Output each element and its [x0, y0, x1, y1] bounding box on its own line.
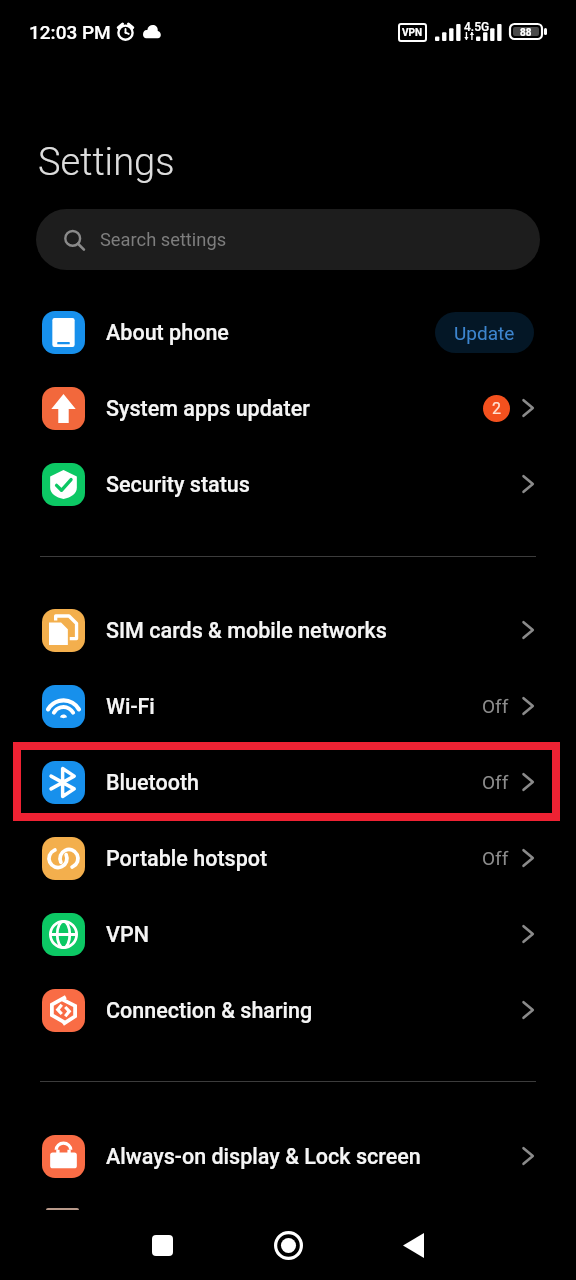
staticText: Search settings: [100, 229, 227, 250]
button[interactable]: Always-on display & Lock screen: [0, 1118, 576, 1194]
button[interactable]: Bluetooth: [0, 744, 576, 820]
staticText: Security status: [106, 472, 250, 497]
staticText: Off: [482, 695, 509, 717]
button[interactable]: Portable hotspot: [0, 820, 576, 896]
staticText: VPN: [106, 922, 149, 947]
button[interactable]: Connection & sharing: [0, 972, 576, 1048]
button[interactable]: Back: [351, 1210, 475, 1280]
staticText: Connection & sharing: [106, 998, 313, 1023]
button[interactable]: Update: [435, 312, 534, 353]
staticText: Portable hotspot: [106, 846, 268, 871]
staticText: Always-on display & Lock screen: [106, 1144, 421, 1169]
staticText: 88: [520, 27, 532, 36]
button[interactable]: System apps updater: [0, 370, 576, 446]
button[interactable]: Search settings: [36, 209, 540, 270]
staticText: Bluetooth: [106, 770, 199, 795]
staticText: Off: [482, 847, 509, 869]
staticText: 2: [492, 399, 501, 418]
staticText: Update: [454, 322, 515, 344]
staticText: SIM cards & mobile networks: [106, 618, 387, 643]
staticText: VPN: [402, 27, 423, 39]
button[interactable]: Security status: [0, 446, 576, 522]
staticText: Off: [482, 771, 509, 793]
button[interactable]: SIM cards & mobile networks: [0, 592, 576, 668]
staticText: 12:03 PM: [29, 21, 111, 43]
button[interactable]: Home: [226, 1210, 350, 1280]
staticText: System apps updater: [106, 396, 310, 421]
button[interactable]: Recent apps: [100, 1210, 224, 1280]
staticText: About phone: [106, 320, 229, 345]
staticText: Settings: [38, 140, 175, 185]
button[interactable]: Wi-Fi: [0, 668, 576, 744]
staticText: 4.5G: [464, 20, 490, 34]
button[interactable]: About phone: [0, 294, 576, 370]
staticText: Wi-Fi: [106, 694, 155, 719]
button[interactable]: VPN: [0, 896, 576, 972]
